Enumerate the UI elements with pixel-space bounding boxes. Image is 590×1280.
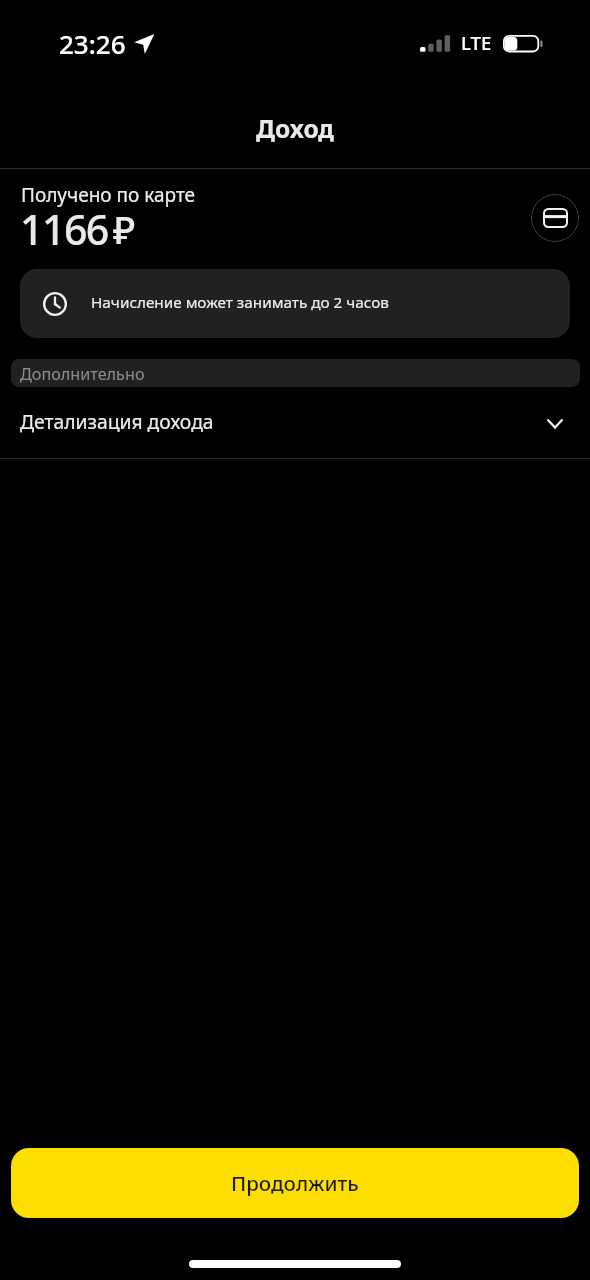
button[interactable]: Начисление может занимать до 2 часов [20, 269, 570, 338]
staticText: Дополнительно [20, 363, 145, 385]
staticText: ₽ [113, 203, 136, 255]
staticText: Продолжить [231, 1169, 359, 1197]
staticText: Доход [256, 112, 334, 145]
button[interactable]: Карта [531, 194, 579, 242]
button[interactable]: Детализация дохода [0, 400, 590, 458]
staticText: Начисление может занимать до 2 часов [91, 292, 389, 313]
staticText: 1166 [20, 201, 108, 257]
button[interactable]: Продолжить [11, 1148, 579, 1218]
staticText: Детализация дохода [20, 408, 214, 434]
staticText: 23:26 [59, 26, 126, 61]
staticText: Получено по карте [21, 182, 196, 208]
staticText: LTE [461, 30, 492, 55]
